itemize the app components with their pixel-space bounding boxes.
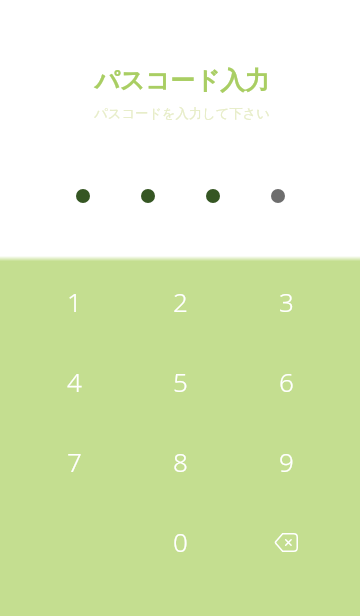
staticText: パスコードを入力して下さい	[2, 105, 360, 122]
button[interactable]: 2	[127, 261, 233, 341]
button[interactable]: Backspace	[233, 501, 339, 581]
staticText: 2	[173, 284, 188, 319]
button[interactable]: 8	[127, 421, 233, 501]
staticText: 6	[279, 364, 294, 399]
button[interactable]: 6	[233, 341, 339, 421]
staticText: 0	[173, 524, 188, 559]
button[interactable]: 1	[21, 261, 127, 341]
staticText: 1	[67, 284, 82, 319]
staticText: 8	[173, 444, 188, 479]
button[interactable]: 0	[127, 501, 233, 581]
button[interactable]: 4	[21, 341, 127, 421]
button[interactable]: 5	[127, 341, 233, 421]
staticText: 7	[67, 444, 82, 479]
staticText: パスコード入力	[2, 65, 360, 96]
button[interactable]: 3	[233, 261, 339, 341]
staticText: 4	[67, 364, 82, 399]
other: Backspace	[274, 533, 298, 552]
staticText: 3	[279, 284, 294, 319]
button[interactable]: 7	[21, 421, 127, 501]
staticText: 9	[279, 444, 294, 479]
staticText: 5	[173, 364, 188, 399]
button[interactable]: 9	[233, 421, 339, 501]
